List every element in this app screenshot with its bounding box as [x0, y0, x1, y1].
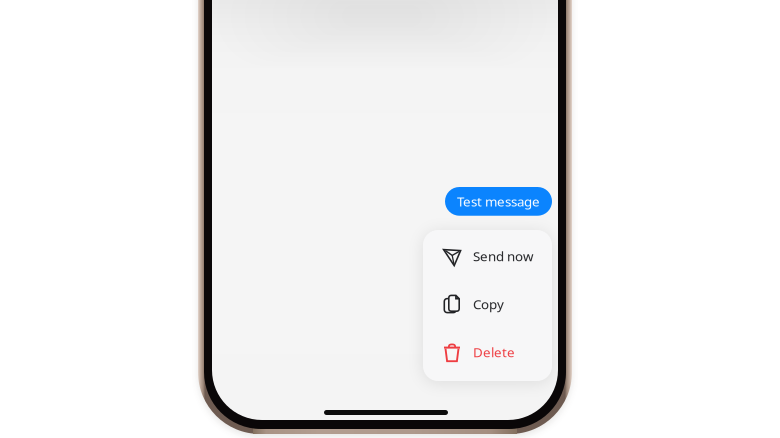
staticText: Send now: [473, 247, 533, 265]
button[interactable]: Send now: [423, 232, 552, 280]
button[interactable]: Delete: [423, 328, 552, 376]
button[interactable]: Test message: [445, 187, 552, 216]
staticText: Delete: [473, 343, 515, 361]
staticText: Copy: [473, 295, 504, 313]
staticText: Test message: [457, 192, 540, 210]
button[interactable]: Copy: [423, 280, 552, 328]
